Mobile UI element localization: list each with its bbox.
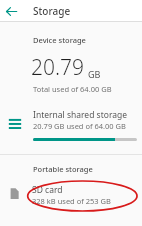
staticText: SD card — [32, 184, 63, 196]
staticText: 20.79 GB used of 64.00 GB — [33, 121, 126, 131]
staticText: GB — [88, 68, 101, 80]
button[interactable]: Internal shared storage — [0, 108, 142, 142]
staticText: 328 kB used of 253 GB — [32, 196, 111, 206]
staticText: 20.79 — [31, 53, 85, 82]
staticText: Storage — [33, 4, 71, 18]
button[interactable]: SD card — [0, 184, 142, 206]
staticText: Internal shared storage — [33, 109, 128, 121]
staticText: Portable storage — [33, 164, 93, 174]
button[interactable]: Back — [5, 5, 18, 18]
staticText: Device storage — [33, 35, 86, 45]
staticText: Total used of 64.00 GB — [33, 84, 112, 94]
